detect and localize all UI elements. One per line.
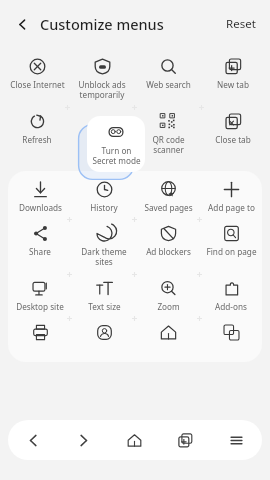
staticText: Unblock ads temporarily <box>78 79 126 101</box>
staticText: Close Internet <box>10 79 65 90</box>
staticText: Share <box>29 246 51 257</box>
button[interactable]: Turn on Secret mode <box>87 116 145 172</box>
button[interactable] <box>136 322 200 358</box>
staticText: QR code scanner <box>152 134 185 156</box>
button[interactable]: Close Internet <box>5 56 69 92</box>
staticText: Text size <box>88 301 121 312</box>
button[interactable]: Tabs <box>160 420 211 460</box>
button[interactable]: Find on page <box>200 223 262 259</box>
button[interactable]: Reset <box>222 12 260 36</box>
staticText: Add-ons <box>215 301 247 312</box>
staticText: Add page to <box>208 202 255 213</box>
button[interactable]: Back <box>8 10 36 38</box>
button[interactable]: Text size <box>72 278 136 314</box>
button[interactable]: Refresh <box>5 111 69 147</box>
staticText: Zoom <box>157 301 180 312</box>
button[interactable]: Menu <box>211 420 262 460</box>
button[interactable]: Saved pages <box>136 179 200 215</box>
button[interactable]: QR code scanner <box>136 111 200 158</box>
staticText: Customize menus <box>40 14 164 34</box>
staticText: Desktop site <box>16 301 64 312</box>
button[interactable]: Close tab <box>201 111 265 147</box>
staticText: Close tab <box>215 134 251 145</box>
button[interactable]: Add-ons <box>200 278 262 314</box>
button[interactable]: Share <box>8 223 72 259</box>
staticText: Saved pages <box>144 202 193 213</box>
button[interactable]: Forward <box>58 420 109 460</box>
button[interactable] <box>8 322 72 358</box>
button[interactable]: Downloads <box>8 179 72 215</box>
button[interactable]: Unblock ads temporarily <box>70 56 134 103</box>
staticText: Turn on Secret mode <box>92 145 141 167</box>
button[interactable]: Home <box>109 420 160 460</box>
staticText: Find on page <box>206 246 257 257</box>
button[interactable]: Desktop site <box>8 278 72 314</box>
staticText: Dark theme sites <box>81 246 127 268</box>
staticText: New tab <box>217 79 249 90</box>
staticText: Web search <box>146 79 191 90</box>
button[interactable]: Back <box>8 420 58 460</box>
button[interactable]: Add page to <box>200 179 262 215</box>
staticText: History <box>90 202 118 213</box>
button[interactable]: Zoom <box>136 278 200 314</box>
button[interactable]: Dark theme sites <box>72 223 136 270</box>
staticText: Refresh <box>22 134 52 145</box>
button[interactable]: Ad blockers <box>136 223 200 259</box>
button[interactable]: New tab <box>201 56 265 92</box>
button[interactable] <box>72 322 136 358</box>
staticText: Reset <box>226 16 256 32</box>
button[interactable]: History <box>72 179 136 215</box>
staticText: Ad blockers <box>146 246 191 257</box>
staticText: Downloads <box>19 202 62 213</box>
button[interactable]: Web search <box>136 56 200 92</box>
button[interactable] <box>200 322 262 358</box>
